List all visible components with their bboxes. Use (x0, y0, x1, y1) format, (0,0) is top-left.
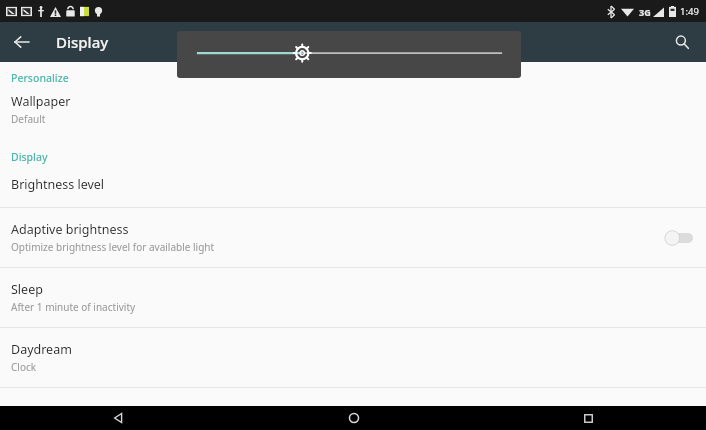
button[interactable]: Search (666, 26, 698, 58)
button[interactable]: Adaptive brightness (0, 208, 706, 267)
button[interactable]: Daydream (0, 328, 706, 387)
staticText: Optimize brightness level for available … (11, 240, 215, 254)
staticText: Adaptive brightness (11, 221, 129, 238)
button[interactable]: Brightness level (0, 166, 706, 207)
staticText: Personalize (11, 71, 706, 85)
button[interactable]: Home (236, 406, 471, 430)
staticText: 3G (639, 6, 651, 18)
button[interactable]: Navigate up (6, 26, 38, 58)
staticText: Wallpaper (11, 93, 71, 110)
staticText: Brightness level (11, 176, 105, 193)
staticText: Display (56, 32, 109, 52)
staticText: Clock (11, 360, 37, 374)
button[interactable]: Back (0, 406, 236, 430)
staticText: Default (11, 112, 46, 126)
button[interactable]: Wallpaper (0, 87, 706, 138)
staticText: 1:49 (680, 5, 699, 18)
staticText: After 1 minute of inactivity (11, 300, 136, 314)
staticText: Sleep (11, 281, 43, 298)
staticText: Daydream (11, 341, 72, 358)
staticText: Display (11, 150, 706, 164)
button[interactable]: Sleep (0, 268, 706, 327)
button[interactable]: Recent apps (471, 406, 706, 430)
button[interactable]: Brightness slider (177, 31, 521, 78)
